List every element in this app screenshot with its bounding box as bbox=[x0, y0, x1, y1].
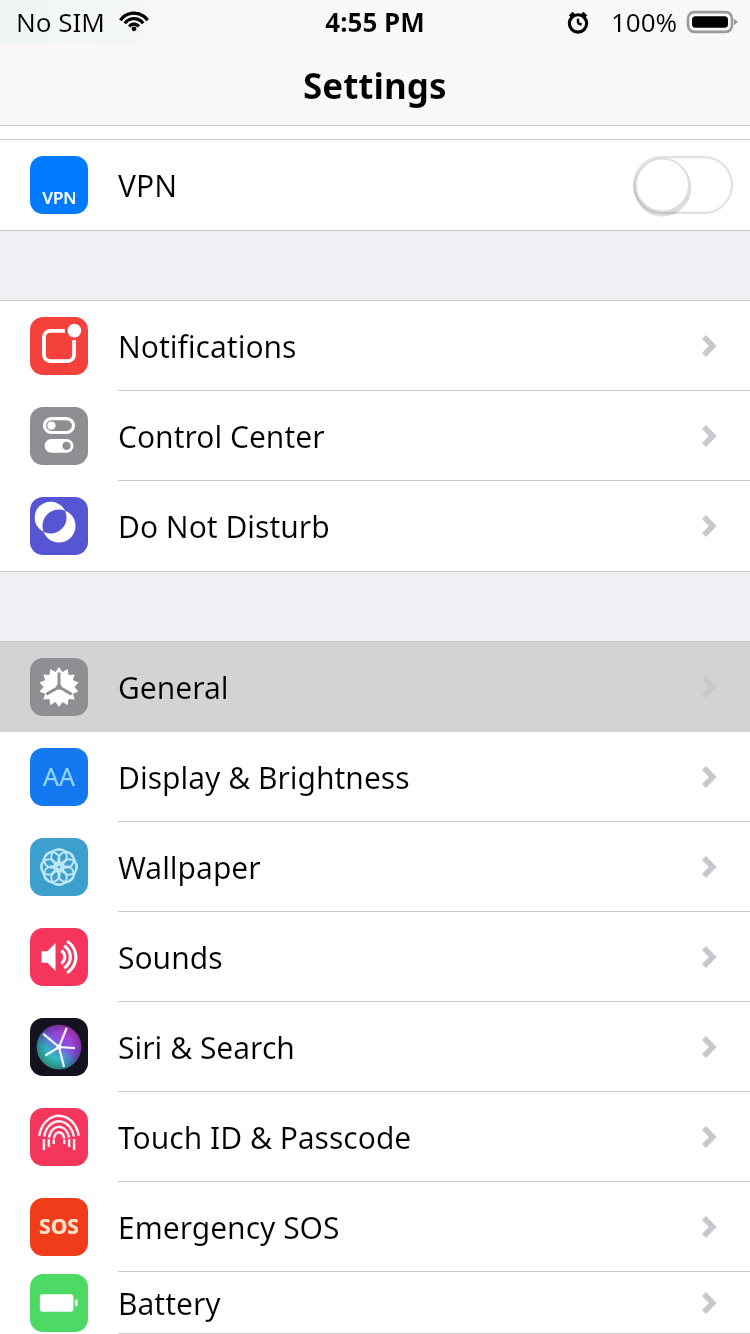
staticText: SOS bbox=[39, 1212, 79, 1241]
button[interactable]: Display & Brightness bbox=[0, 732, 750, 822]
button[interactable]: Sounds bbox=[0, 912, 750, 1002]
button[interactable]: Wallpaper bbox=[0, 822, 750, 912]
staticText: Control Center bbox=[118, 416, 325, 457]
staticText: Siri & Search bbox=[118, 1027, 295, 1068]
button[interactable]: Control Center bbox=[0, 391, 750, 481]
staticText: Display & Brightness bbox=[118, 757, 410, 798]
button[interactable]: Siri & Search bbox=[0, 1002, 750, 1092]
button[interactable]: Battery bbox=[0, 1272, 750, 1334]
button[interactable]: VPN bbox=[0, 140, 750, 230]
staticText: Do Not Disturb bbox=[118, 506, 330, 547]
staticText: Notifications bbox=[118, 326, 297, 367]
button[interactable]: Notifications bbox=[0, 301, 750, 391]
staticText: Wallpaper bbox=[118, 847, 261, 888]
staticText: VPN bbox=[42, 186, 77, 209]
staticText: AA bbox=[43, 759, 75, 793]
staticText: Touch ID & Passcode bbox=[118, 1117, 412, 1158]
staticText: Sounds bbox=[118, 937, 223, 978]
button[interactable]: Touch ID & Passcode bbox=[0, 1092, 750, 1182]
button[interactable]: VPN toggle, off bbox=[618, 140, 750, 230]
staticText: General bbox=[118, 667, 229, 708]
staticText: Settings bbox=[303, 62, 447, 110]
staticText: No SIM bbox=[16, 4, 105, 39]
button[interactable]: Emergency SOS bbox=[0, 1182, 750, 1272]
staticText: 100% bbox=[611, 4, 678, 39]
staticText: Battery bbox=[118, 1283, 221, 1324]
staticText: VPN bbox=[118, 165, 177, 206]
button[interactable]: General bbox=[0, 642, 750, 732]
staticText: 4:55 PM bbox=[325, 4, 425, 39]
button[interactable]: Do Not Disturb bbox=[0, 481, 750, 571]
staticText: Emergency SOS bbox=[118, 1207, 340, 1248]
